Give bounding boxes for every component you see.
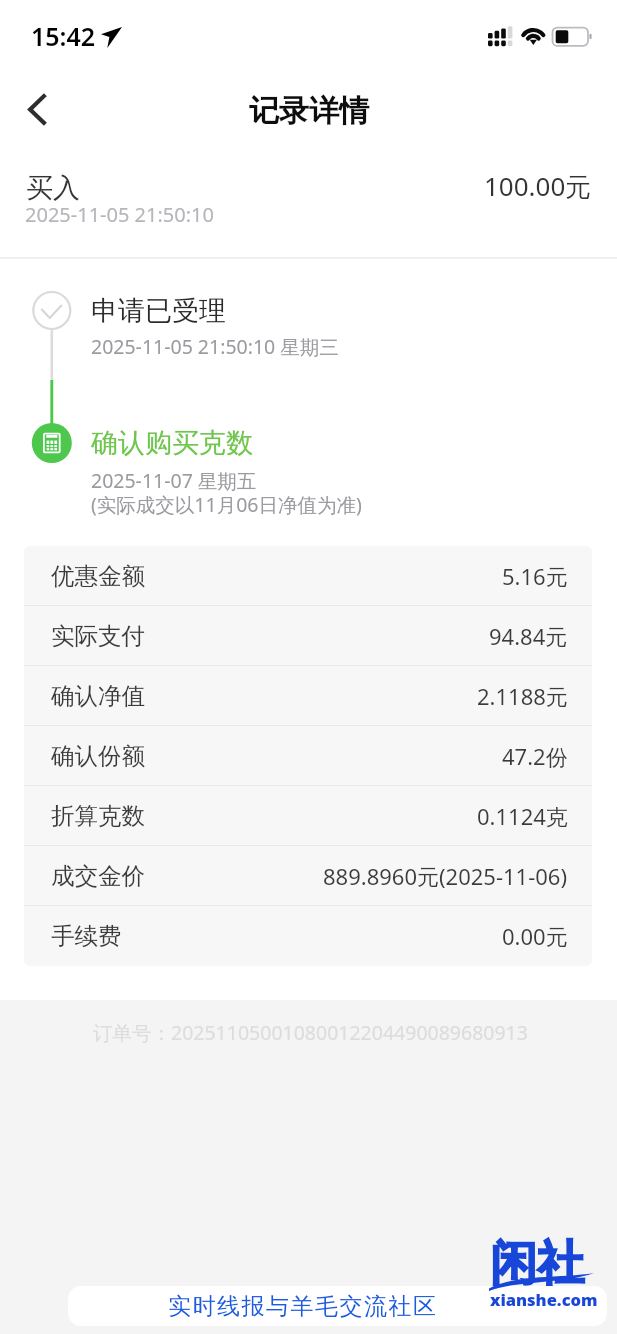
staticText: 2.1188元 bbox=[477, 681, 568, 711]
button[interactable]: Back bbox=[8, 72, 66, 146]
button[interactable]: 实际支付 bbox=[24, 606, 592, 666]
staticText: 手续费 bbox=[51, 921, 122, 951]
staticText: 实时线报与羊毛交流社区 bbox=[168, 1292, 438, 1321]
button[interactable]: 折算克数 bbox=[24, 786, 592, 846]
staticText: (实际成交以11月06日净值为准) bbox=[91, 491, 362, 518]
staticText: 成交金价 bbox=[51, 861, 145, 891]
staticText: 0.00元 bbox=[502, 921, 568, 951]
button[interactable]: 实时线报与羊毛交流社区 bbox=[68, 1286, 607, 1326]
button[interactable]: 手续费 bbox=[24, 906, 592, 966]
button[interactable]: 确认份额 bbox=[24, 726, 592, 786]
staticText: 0.1124克 bbox=[477, 801, 568, 831]
staticText: 确认份额 bbox=[51, 741, 145, 771]
staticText: 2025-11-07 星期五 bbox=[91, 467, 257, 494]
staticText: 记录详情 bbox=[249, 92, 369, 130]
staticText: 申请已受理 bbox=[91, 294, 226, 328]
staticText: 闲社 bbox=[490, 1234, 584, 1293]
staticText: 5.16元 bbox=[502, 561, 568, 591]
staticText: 确认购买克数 bbox=[91, 426, 253, 460]
staticText: 确认净值 bbox=[51, 681, 145, 711]
staticText: 2025-11-05 21:50:10 bbox=[25, 201, 214, 228]
button[interactable]: 成交金价 bbox=[24, 846, 592, 906]
staticText: 折算克数 bbox=[51, 801, 145, 831]
staticText: 2025-11-05 21:50:10 星期三 bbox=[91, 333, 339, 360]
staticText: 优惠金额 bbox=[51, 561, 145, 591]
staticText: 订单号：20251105001080012204490089680913 bbox=[93, 1019, 528, 1046]
staticText: xianshe.com bbox=[490, 1288, 598, 1310]
staticText: 买入 bbox=[26, 171, 80, 205]
staticText: 94.84元 bbox=[489, 621, 568, 651]
staticText: 47.2份 bbox=[502, 741, 568, 771]
staticText: 889.8960元(2025-11-06) bbox=[323, 861, 568, 891]
button[interactable]: 优惠金额 bbox=[24, 546, 592, 606]
button[interactable]: 确认净值 bbox=[24, 666, 592, 726]
staticText: 实际支付 bbox=[51, 621, 145, 651]
staticText: 100.00元 bbox=[484, 168, 592, 204]
staticText: 15:42 bbox=[31, 19, 96, 53]
